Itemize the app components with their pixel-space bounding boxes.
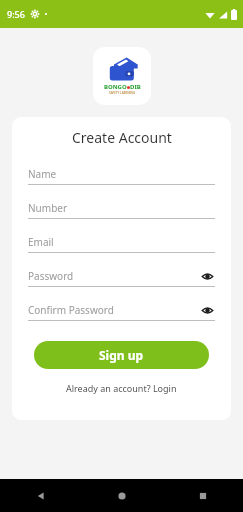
staticText: Sign up [99,347,144,363]
staticText: SAFETY LEARNING [109,91,136,95]
staticText: DIB [130,83,141,91]
staticText: Already an account? Login [66,382,177,394]
staticText: Email [28,235,54,249]
staticText: 9:56 [7,8,25,20]
staticText: Password [28,269,74,283]
button[interactable]: Back [0,479,81,512]
button[interactable]: Recent apps [162,479,243,512]
button[interactable]: Sign up [34,341,209,369]
button[interactable]: Toggle password visibility [199,302,215,318]
button[interactable]: Already an account? Login [62,380,181,396]
staticText: Name [28,167,57,181]
staticText: BONGO [104,83,127,91]
button[interactable]: Home [81,479,162,512]
staticText: Create Account [72,128,172,147]
button[interactable]: Toggle password visibility [199,268,215,284]
staticText: Number [28,201,68,215]
staticText: Confirm Password [28,303,114,317]
